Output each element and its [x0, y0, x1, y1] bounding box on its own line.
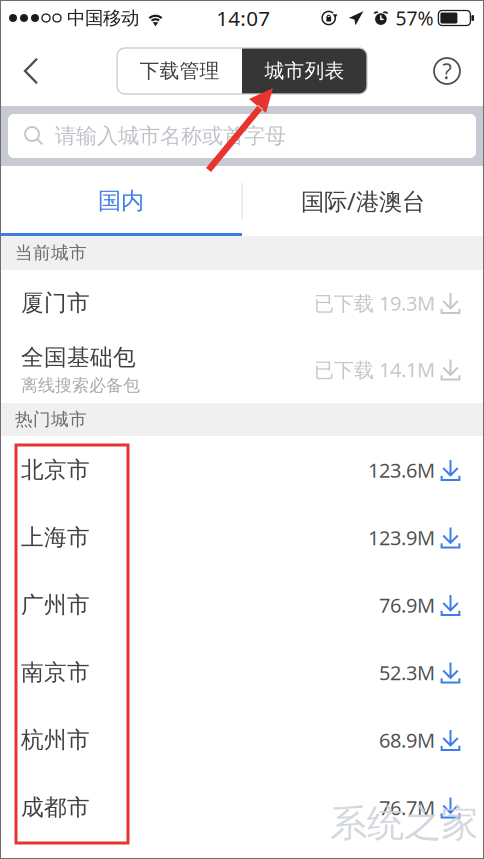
staticText: 76.7M [379, 794, 435, 821]
button[interactable]: Help [410, 36, 484, 106]
staticText: 北京市 [21, 456, 90, 484]
button[interactable]: 上海市 [0, 504, 484, 571]
staticText: 68.9M [379, 726, 435, 754]
staticText: 123.6M [368, 456, 435, 484]
button[interactable]: 国内 [0, 166, 242, 236]
staticText: 57% [395, 5, 433, 31]
button[interactable]: 广州市 [0, 571, 484, 639]
staticText: 上海市 [21, 523, 90, 552]
staticText: 请输入城市名称或首字母 [55, 123, 286, 149]
staticText: 全国基础包 [21, 343, 136, 372]
button[interactable]: 全国基础包 [0, 336, 484, 403]
staticText: 中国移动 [67, 6, 139, 30]
staticText: 成都市 [21, 793, 90, 822]
staticText: 76.9M [379, 591, 435, 619]
button[interactable]: 杭州市 [0, 706, 484, 774]
staticText: 广州市 [21, 591, 90, 619]
button[interactable]: 南京市 [0, 639, 484, 706]
staticText: 当前城市 [15, 242, 87, 264]
staticText: 南京市 [21, 658, 90, 687]
button[interactable]: 成都市 [0, 774, 484, 841]
button[interactable]: 北京市 [0, 436, 484, 504]
staticText: 国际/港澳台 [301, 185, 425, 217]
button[interactable]: 下载管理 [117, 48, 242, 94]
button[interactable]: 厦门市 [0, 270, 484, 336]
staticText: 已下载 14.1M [314, 356, 435, 383]
staticText: 厦门市 [21, 289, 90, 317]
staticText: 14:07 [216, 4, 270, 32]
staticText: 系统之家 [330, 800, 478, 847]
staticText: 下载管理 [139, 59, 219, 83]
staticText: 杭州市 [21, 726, 90, 754]
staticText: 123.9M [368, 524, 435, 551]
button[interactable]: 城市列表 [242, 48, 367, 94]
staticText: 城市列表 [264, 59, 344, 83]
staticText: 离线搜索必备包 [21, 375, 140, 396]
staticText: 热门城市 [15, 408, 87, 431]
button[interactable]: Back [0, 36, 62, 106]
staticText: 已下载 19.3M [314, 289, 435, 317]
staticText: 52.3M [379, 659, 435, 686]
staticText: ? [442, 56, 451, 86]
button[interactable]: 国际/港澳台 [242, 166, 484, 236]
staticText: 国内 [98, 186, 144, 216]
